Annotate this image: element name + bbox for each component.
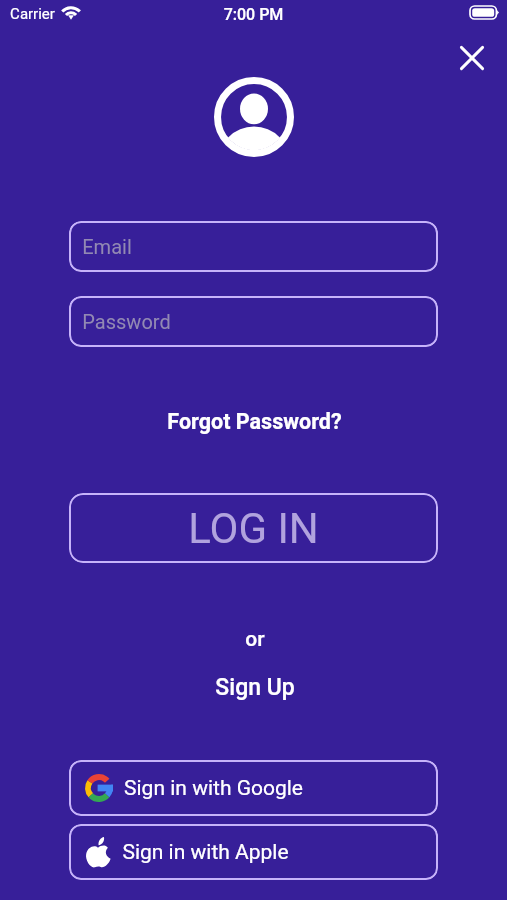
button[interactable]: LOG IN <box>69 493 438 563</box>
button[interactable]: Forgot Password? <box>1 409 507 434</box>
button[interactable]: Sign Up <box>1 674 507 701</box>
staticText: Sign in with Apple <box>122 840 289 865</box>
staticText: Carrier <box>10 5 55 23</box>
button[interactable]: Close <box>452 38 492 78</box>
staticText: Email <box>82 235 132 258</box>
staticText: Forgot Password? <box>167 409 342 434</box>
staticText: LOG IN <box>188 504 319 553</box>
staticText: Password <box>82 310 171 333</box>
staticText: 7:00 PM <box>0 5 507 24</box>
button[interactable]: Email <box>69 221 438 272</box>
staticText: Sign in with Google <box>124 776 303 801</box>
button[interactable]: Sign in with Apple <box>69 824 438 880</box>
button[interactable]: Password <box>69 296 438 347</box>
staticText: or <box>245 627 265 652</box>
button[interactable]: Sign in with Google <box>69 760 438 816</box>
staticText: Sign Up <box>215 674 295 701</box>
